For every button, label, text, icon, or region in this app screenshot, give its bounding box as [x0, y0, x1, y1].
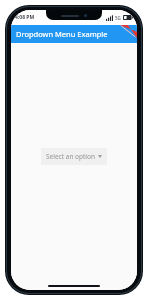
staticText: Dropdown Menu Example: [16, 29, 108, 39]
staticText: 4:08 PM: [15, 14, 35, 21]
button[interactable]: Select an option: [41, 148, 107, 165]
other: Open dropdown: [98, 155, 102, 158]
staticText: Select an option: [46, 152, 95, 161]
staticText: 5G: [115, 15, 121, 21]
